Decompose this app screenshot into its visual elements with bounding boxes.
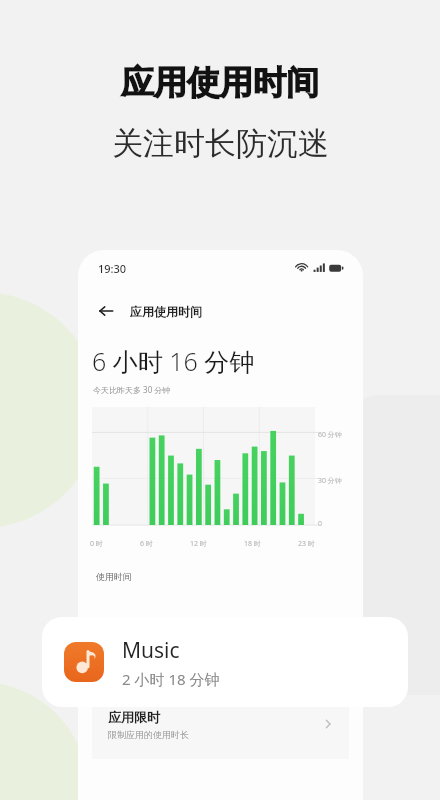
staticText: 0 时 xyxy=(90,539,103,549)
staticText: 18 时 xyxy=(244,539,261,549)
staticText: 限制应用的使用时长 xyxy=(108,729,189,740)
staticText: 12 时 xyxy=(190,539,207,549)
button[interactable]: 应用限时 xyxy=(92,689,349,759)
staticText: 6 时 xyxy=(140,539,153,549)
button[interactable]: Back xyxy=(94,299,118,323)
staticText: 0 xyxy=(318,519,323,529)
staticText: 今天比昨天多 30 分钟 xyxy=(93,384,171,395)
staticText: 6 小时 16 分钟 xyxy=(92,344,255,378)
button[interactable]: Music xyxy=(42,617,408,707)
staticText: 60 分钟 xyxy=(318,430,342,440)
staticText: Music xyxy=(122,636,180,665)
staticText: 关注时长防沉迷 xyxy=(112,124,329,163)
staticText: 时间管理 xyxy=(96,668,132,679)
staticText: 应用使用时间 xyxy=(121,62,319,104)
staticText: 应用限时 xyxy=(108,709,160,725)
staticText: 30 分钟 xyxy=(318,476,342,486)
staticText: 应用使用时间 xyxy=(130,304,202,319)
staticText: 23 时 xyxy=(298,539,315,549)
staticText: 19:30 xyxy=(98,261,127,276)
staticText: 2 小时 18 分钟 xyxy=(122,669,220,689)
staticText: 使用时间 xyxy=(96,571,132,582)
